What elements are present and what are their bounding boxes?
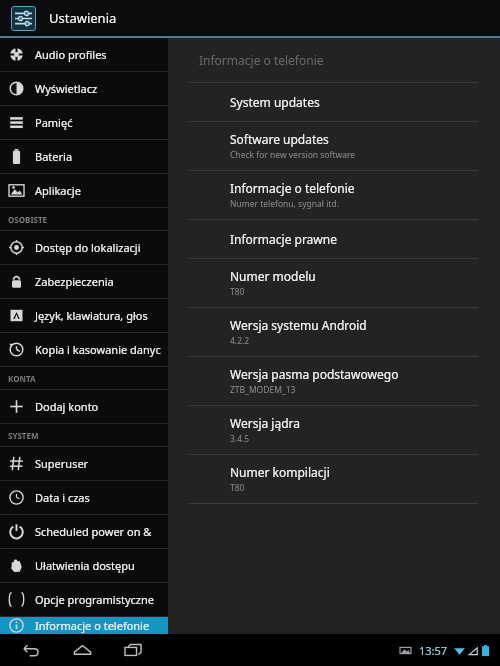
staticText: Superuser <box>35 456 89 471</box>
staticText: T80 <box>230 482 245 494</box>
staticText: Pamięć <box>35 115 73 130</box>
button[interactable]: Aplikacje <box>0 174 168 207</box>
button[interactable]: Home <box>65 634 99 666</box>
other: Settings <box>11 6 36 31</box>
staticText: Data i czas <box>35 490 90 505</box>
button[interactable]: Wersja jądra <box>168 406 500 454</box>
staticText: SYSTEM <box>8 430 39 441</box>
button[interactable]: Dodaj konto <box>0 390 168 423</box>
button[interactable]: Software updates <box>168 122 500 170</box>
staticText: Aplikacje <box>35 183 81 198</box>
staticText: Numer modelu <box>230 268 316 284</box>
button[interactable]: Back <box>14 634 48 666</box>
staticText: Wersja systemu Android <box>230 317 367 333</box>
staticText: Check for new version software <box>230 149 356 161</box>
staticText: Audio profiles <box>35 47 107 62</box>
staticText: Ułatwienia dostępu <box>35 558 135 573</box>
button[interactable]: Recent apps <box>116 634 150 666</box>
staticText: Bateria <box>35 149 73 164</box>
staticText: Kopia i kasowanie danyc <box>35 342 161 357</box>
staticText: Dodaj konto <box>35 399 99 414</box>
button[interactable]: Informacje prawne <box>168 220 500 258</box>
button[interactable]: Pamięć <box>0 106 168 139</box>
staticText: KONTA <box>8 373 36 384</box>
button[interactable]: Ułatwienia dostępu <box>0 549 168 582</box>
staticText: Język, klawiatura, głos <box>35 308 148 323</box>
button[interactable]: Opcje programistyczne <box>0 583 168 616</box>
button[interactable]: Wyświetlacz <box>0 72 168 105</box>
button[interactable]: Język, klawiatura, głos <box>0 299 168 332</box>
button[interactable]: Bateria <box>0 140 168 173</box>
button[interactable]: Kopia i kasowanie danyc <box>0 333 168 366</box>
staticText: Informacje o telefonie <box>35 618 150 633</box>
staticText: OSOBISTE <box>8 214 47 225</box>
staticText: Opcje programistyczne <box>35 592 154 607</box>
button[interactable]: Numer modelu <box>168 259 500 307</box>
button[interactable]: Audio profiles <box>0 38 168 71</box>
staticText: 4.2.2 <box>230 335 250 347</box>
button[interactable]: Informacje o telefonie <box>0 617 168 634</box>
button[interactable]: System updates <box>168 83 500 121</box>
staticText: Informacje o telefonie <box>199 52 324 68</box>
button[interactable]: Dostęp do lokalizacji <box>0 231 168 264</box>
staticText: T80 <box>230 286 245 298</box>
staticText: System updates <box>230 94 320 110</box>
staticText: Zabezpieczenia <box>35 274 114 289</box>
staticText: 13:57 <box>419 643 448 658</box>
staticText: Software updates <box>230 131 329 147</box>
button[interactable]: Informacje o telefonie <box>168 171 500 219</box>
staticText: Numer kompilacji <box>230 464 330 480</box>
button[interactable]: Superuser <box>0 447 168 480</box>
staticText: ZTB_MODEM_13 <box>230 384 296 396</box>
staticText: Numer telefonu, sygnał itd. <box>230 198 339 210</box>
button[interactable]: Wersja systemu Android <box>168 308 500 356</box>
staticText: Informacje o telefonie <box>230 180 355 196</box>
button[interactable]: Scheduled power on & off <box>0 515 168 548</box>
button[interactable]: Zabezpieczenia <box>0 265 168 298</box>
staticText: Ustawienia <box>49 9 117 27</box>
staticText: Wersja pasma podstawowego <box>230 366 399 382</box>
staticText: Dostęp do lokalizacji <box>35 240 141 255</box>
staticText: Wyświetlacz <box>35 81 98 96</box>
staticText: 3.4.5 <box>230 433 250 445</box>
staticText: Scheduled power on & off <box>35 524 168 539</box>
button[interactable]: Numer kompilacji <box>168 455 500 503</box>
button[interactable]: Wersja pasma podstawowego <box>168 357 500 405</box>
staticText: Wersja jądra <box>230 415 300 431</box>
button[interactable]: Data i czas <box>0 481 168 514</box>
staticText: Informacje prawne <box>230 231 337 247</box>
